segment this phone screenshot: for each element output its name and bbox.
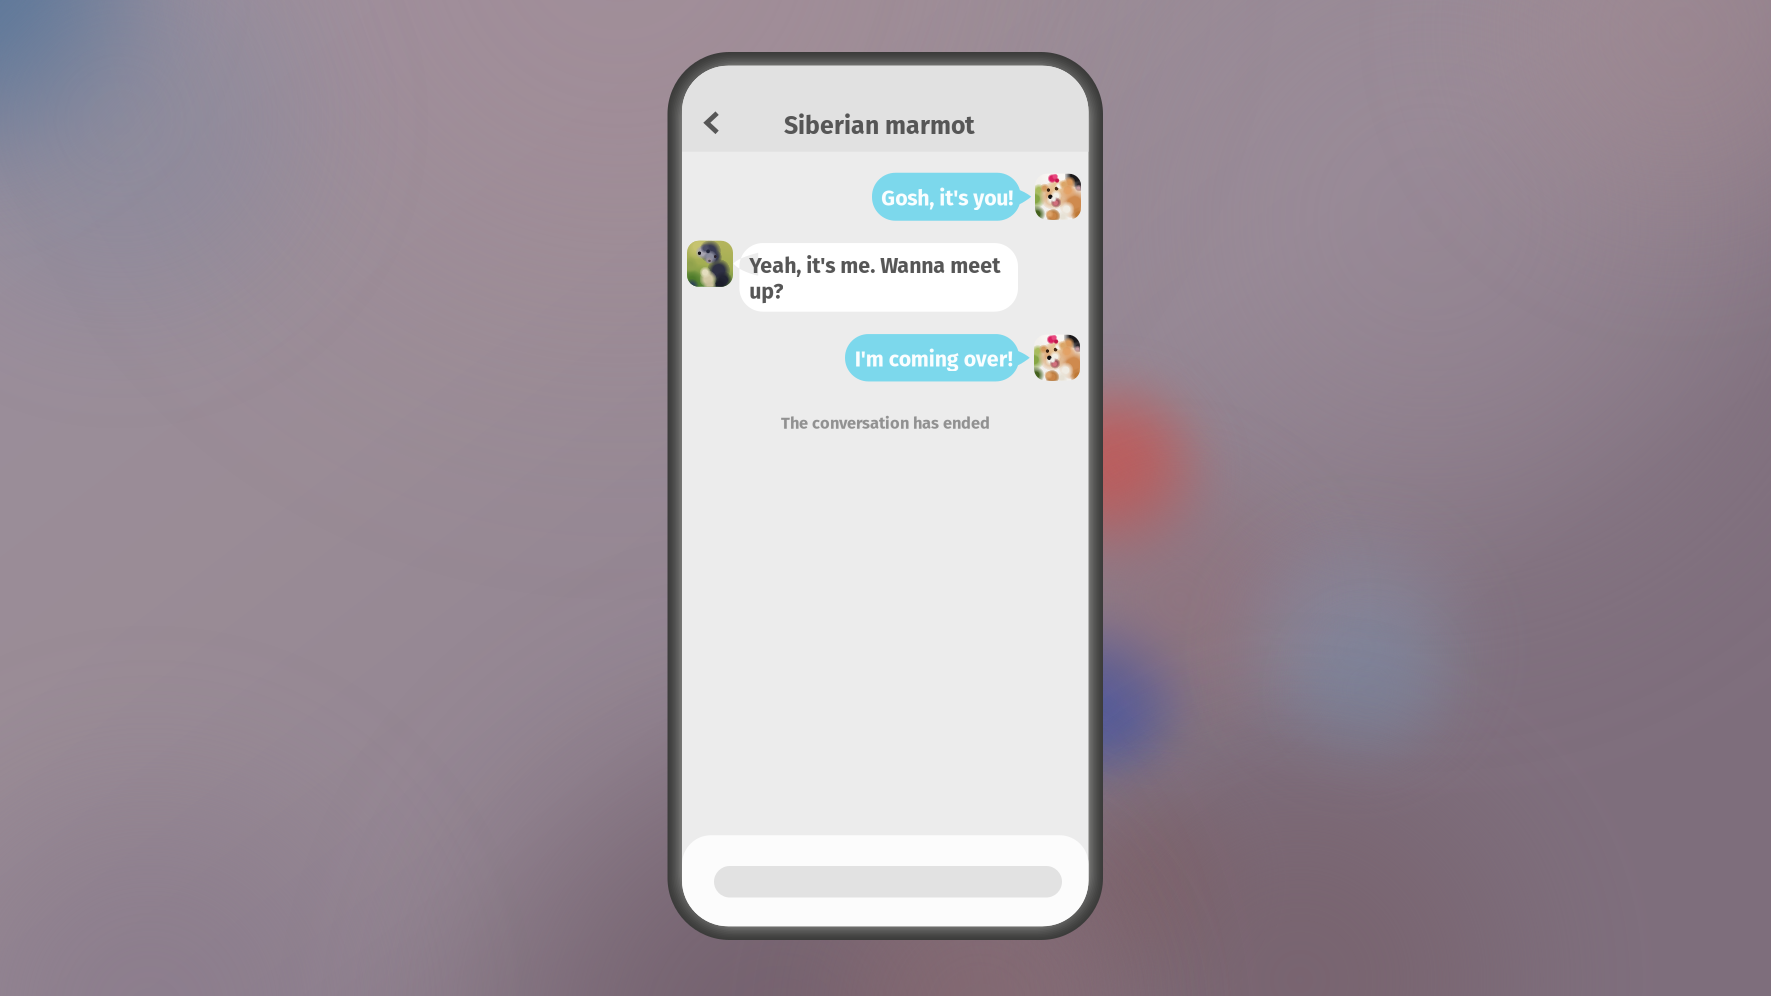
staticText: Gosh, it's you!	[881, 185, 1013, 211]
staticText: The conversation has ended	[781, 413, 990, 433]
staticText: Yeah, it's me. Wanna meet up?	[749, 253, 1000, 304]
button[interactable]: Back	[690, 100, 734, 146]
staticText: I'm coming over!	[855, 346, 1013, 372]
staticText: Siberian marmot	[784, 111, 975, 141]
